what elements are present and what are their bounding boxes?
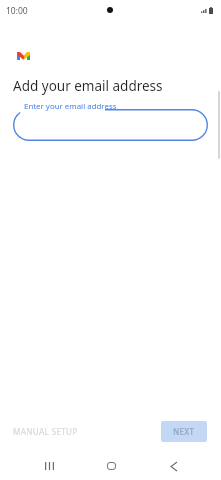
staticText: NEXT bbox=[173, 426, 195, 437]
button[interactable]: MANUAL SETUP bbox=[7, 421, 84, 442]
staticText: 10:00 bbox=[6, 5, 28, 17]
button[interactable]: Back bbox=[154, 446, 194, 480]
staticText: Add your email address bbox=[13, 77, 163, 95]
staticText: Enter your email address bbox=[24, 101, 117, 112]
button[interactable]: Recent apps bbox=[30, 446, 70, 480]
button[interactable]: NEXT bbox=[161, 421, 207, 442]
button[interactable]: Home bbox=[92, 446, 132, 480]
button[interactable] bbox=[13, 109, 208, 141]
staticText: MANUAL SETUP bbox=[13, 426, 78, 437]
